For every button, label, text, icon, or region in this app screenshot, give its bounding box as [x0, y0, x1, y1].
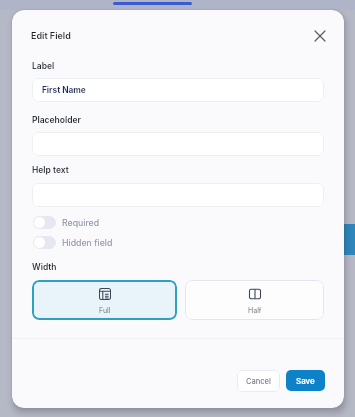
staticText: Hidden field [62, 237, 113, 248]
button[interactable] [307, 23, 332, 48]
staticText: Edit Field [31, 30, 71, 41]
button[interactable] [32, 183, 324, 207]
button[interactable]: Half [185, 280, 324, 320]
staticText: First Name [42, 85, 86, 95]
staticText: Save [296, 376, 315, 386]
button[interactable]: Full [32, 280, 177, 320]
button[interactable]: Required [33, 216, 100, 229]
staticText: Required [62, 217, 100, 228]
staticText: Help text [32, 165, 69, 175]
staticText: Cancel [246, 377, 271, 386]
staticText: Label [32, 61, 55, 71]
staticText: Width [32, 262, 57, 272]
button[interactable]: First Name [32, 78, 324, 102]
button[interactable]: Save [286, 370, 325, 391]
staticText: Half [248, 306, 262, 314]
staticText: Placeholder [32, 115, 81, 125]
staticText: Full [99, 306, 111, 314]
button[interactable]: Cancel [237, 370, 280, 392]
button[interactable] [32, 132, 324, 156]
button[interactable]: Hidden field [33, 236, 113, 249]
